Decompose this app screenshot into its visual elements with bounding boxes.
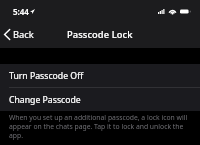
staticText: Turn Passcode Off <box>9 70 84 82</box>
staticText: Back <box>13 28 34 41</box>
staticText: Change Passcode <box>9 94 81 106</box>
button[interactable]: Back <box>0 24 40 45</box>
button[interactable]: Change Passcode <box>0 88 200 111</box>
staticText: When you set up an additional passcode, … <box>9 113 192 140</box>
staticText: 5:44 <box>13 6 29 17</box>
staticText: Passcode Lock <box>67 28 133 41</box>
button[interactable]: Turn Passcode Off <box>0 64 200 87</box>
